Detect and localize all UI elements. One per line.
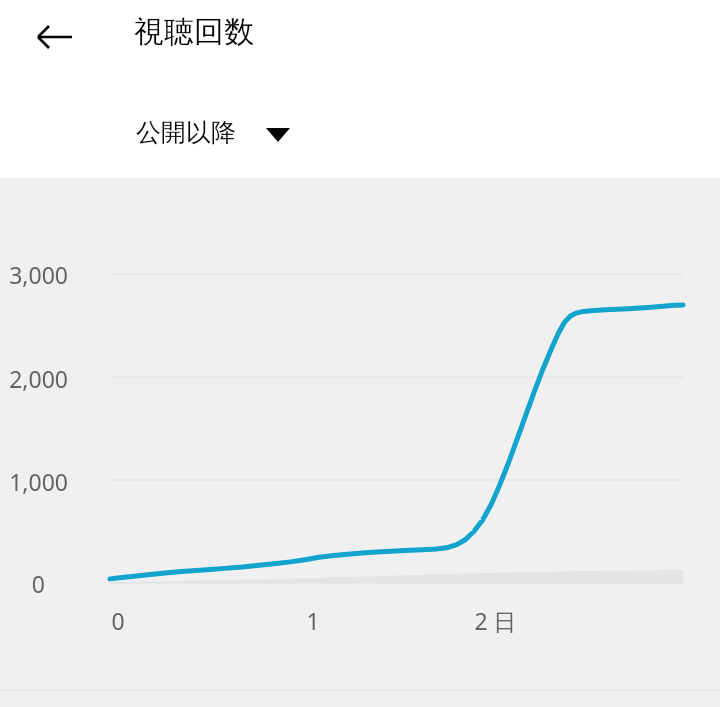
staticText: 2,000	[9, 363, 68, 394]
staticText: 視聴回数	[134, 13, 254, 51]
staticText: 0	[111, 605, 125, 636]
staticText: 1,000	[9, 466, 68, 497]
staticText: 3,000	[9, 259, 68, 290]
staticText: 2 日	[474, 605, 517, 636]
staticText: 公開以降	[136, 117, 236, 148]
button[interactable]: 公開以降	[128, 108, 304, 160]
staticText: 1	[306, 605, 320, 636]
button[interactable]: Back	[19, 1, 91, 73]
staticText: 0	[31, 568, 45, 599]
